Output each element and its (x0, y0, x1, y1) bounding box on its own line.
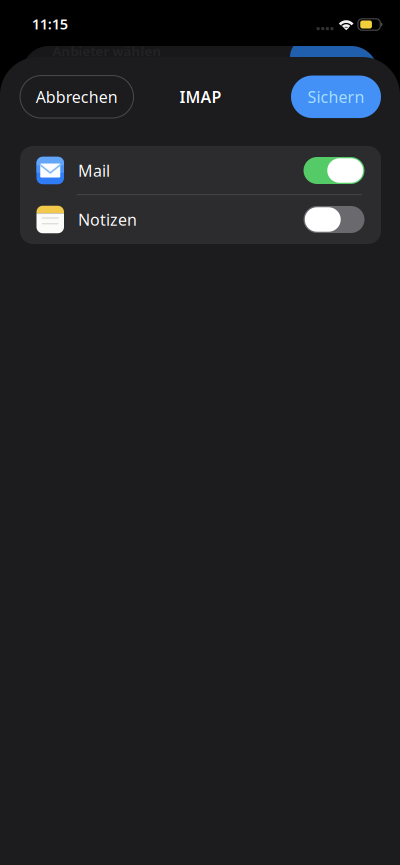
staticText: Anbieter wählen (52, 42, 161, 60)
staticText: 11:15 (32, 14, 68, 34)
staticText: Sichern (307, 86, 364, 107)
button[interactable]: Abbrechen (20, 75, 133, 118)
staticText: Notizen (78, 209, 137, 230)
staticText: Abbrechen (36, 86, 118, 107)
button[interactable]: Sichern (291, 75, 381, 118)
staticText: Mail (78, 160, 110, 181)
staticText: IMAP (179, 86, 221, 107)
button[interactable]: Mail (20, 146, 381, 195)
button[interactable]: Notizen (20, 195, 381, 244)
